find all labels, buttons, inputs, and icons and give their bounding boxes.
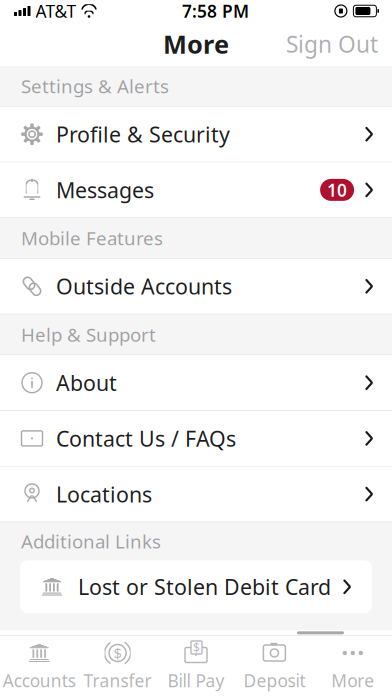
button[interactable]: Profile & Security: [0, 107, 392, 162]
button[interactable]: Outside Accounts: [0, 259, 392, 314]
button[interactable]: Accounts: [0, 638, 78, 694]
staticText: Outside Accounts: [56, 272, 232, 300]
button[interactable]: $: [157, 638, 235, 694]
staticText: Settings & Alerts: [21, 74, 169, 98]
staticText: More: [331, 669, 374, 692]
staticText: Additional Links: [21, 529, 161, 554]
staticText: Contact Us / FAQs: [56, 424, 236, 452]
staticText: Bill Pay: [167, 669, 224, 692]
staticText: Deposit: [243, 669, 305, 692]
staticText: Mobile Features: [21, 226, 163, 250]
staticText: $: [114, 643, 122, 663]
staticText: Messages: [56, 176, 154, 204]
staticText: More: [163, 27, 229, 61]
staticText: Transfer: [84, 669, 152, 692]
button[interactable]: Sign Out: [272, 18, 392, 70]
staticText: Lost or Stolen Debit Card: [78, 573, 331, 601]
staticText: Accounts: [3, 669, 76, 692]
button[interactable]: Deposit: [235, 638, 314, 694]
staticText: About: [56, 368, 117, 397]
staticText: $: [193, 639, 200, 655]
button[interactable]: Lost or Stolen Debit Card: [20, 560, 372, 613]
staticText: Sign Out: [286, 29, 378, 59]
staticText: 10: [327, 178, 347, 201]
button[interactable]: Messages: [0, 162, 392, 217]
button[interactable]: About: [0, 355, 392, 410]
staticText: Help & Support: [21, 322, 156, 347]
staticText: 7:58 PM: [182, 0, 249, 22]
staticText: AT&T: [35, 0, 76, 22]
button[interactable]: $: [78, 638, 157, 694]
staticText: Profile & Security: [56, 120, 230, 148]
button[interactable]: Locations: [0, 467, 392, 522]
button[interactable]: Contact Us / FAQs: [0, 411, 392, 466]
staticText: Locations: [56, 480, 152, 508]
button[interactable]: More: [314, 638, 392, 694]
